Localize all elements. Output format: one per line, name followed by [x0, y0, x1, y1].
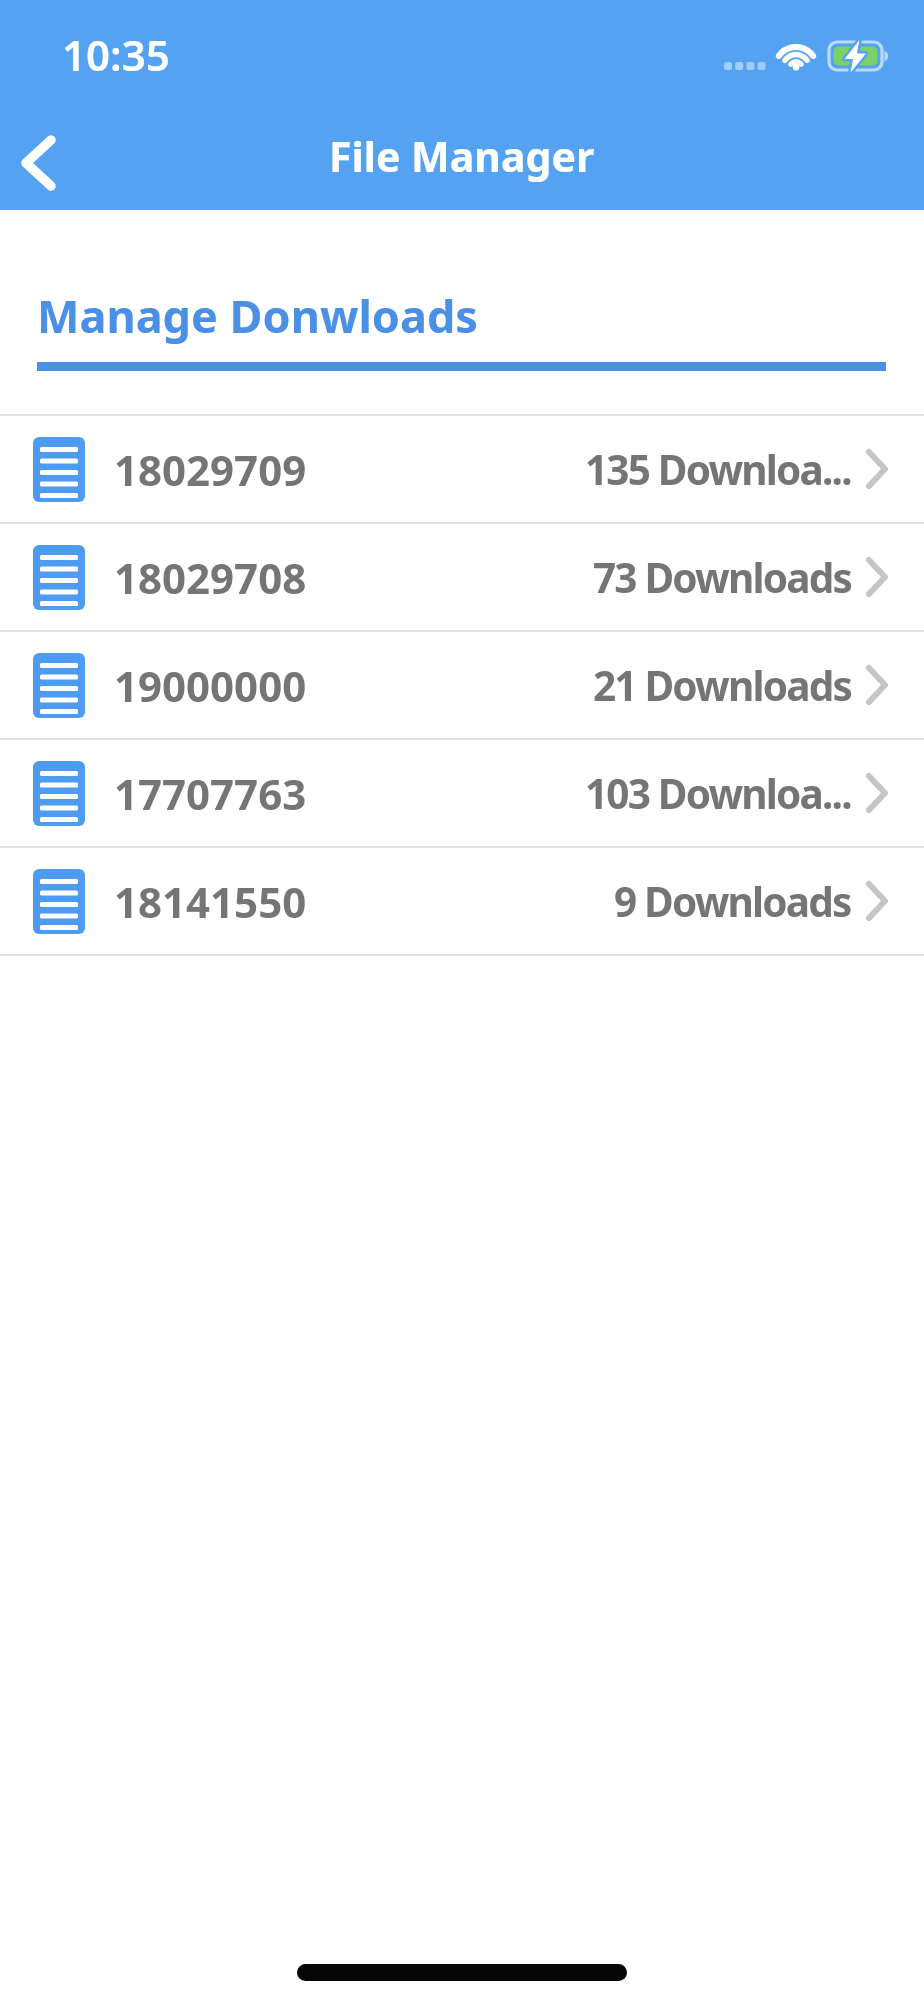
staticText: Manage Donwloads [37, 285, 478, 346]
staticText: 18029708 [114, 549, 307, 606]
button[interactable]: 18029709 [0, 416, 924, 522]
staticText: File Manager [329, 128, 595, 184]
staticText: 9 Downloads [614, 874, 851, 929]
button[interactable]: 19000000 [0, 632, 924, 738]
staticText: 21 Downloads [593, 658, 851, 713]
staticText: 103 Downloa... [585, 766, 851, 821]
button[interactable]: 17707763 [0, 740, 924, 846]
staticText: 19000000 [114, 657, 307, 714]
staticText: 18029709 [114, 441, 307, 498]
staticText: 17707763 [114, 765, 307, 822]
staticText: 18141550 [114, 873, 307, 930]
button[interactable] [4, 122, 74, 207]
staticText: 135 Downloa... [585, 442, 851, 497]
staticText: 73 Downloads [593, 550, 851, 605]
staticText: 10:35 [62, 26, 170, 83]
button[interactable]: 18141550 [0, 848, 924, 954]
button[interactable]: 18029708 [0, 524, 924, 630]
